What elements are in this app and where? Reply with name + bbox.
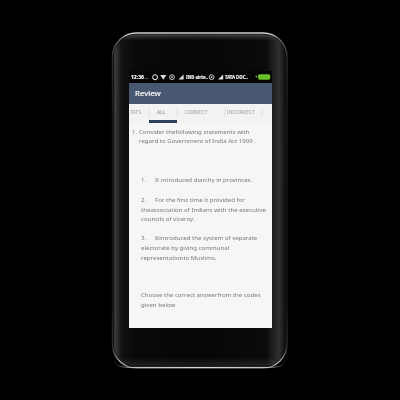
staticText: councils of viceroy. <box>141 214 195 222</box>
staticText: TATA DOC.. <box>225 74 248 80</box>
staticText: CORRECT <box>185 109 208 115</box>
button[interactable]: Review <box>129 83 272 104</box>
staticText: 1. <box>141 175 147 183</box>
staticText: Choose the correct answerfrom the codes <box>141 290 261 298</box>
staticText: INCORRECT <box>227 109 256 115</box>
button[interactable]: CORRECT <box>174 104 219 120</box>
staticText: regard to Government of India Act 1909 . <box>139 136 256 144</box>
staticText: It introduced diarchy in provinces. <box>155 175 253 183</box>
button[interactable]: TATS <box>123 104 149 120</box>
staticText: Itintroduced the system of separate <box>155 233 258 241</box>
staticText: + <box>255 74 258 80</box>
staticText: ALL <box>157 109 166 115</box>
staticText: electorate by giving communal <box>141 243 230 251</box>
button[interactable]: INCORRECT <box>220 104 262 120</box>
button[interactable]: ALL <box>149 104 174 120</box>
staticText: 3. <box>141 233 147 241</box>
staticText: IND airte.. <box>186 74 209 80</box>
staticText: theassociation of Indians with the execu… <box>141 205 267 213</box>
staticText: TATS <box>130 109 142 115</box>
staticText: 1. <box>132 127 138 135</box>
staticText: ... <box>145 75 149 80</box>
staticText: For the first time it provided for <box>155 195 245 203</box>
staticText: Consider thefollowing statements with <box>139 127 250 135</box>
staticText: 2. <box>141 195 147 203</box>
staticText: representationto Muslims. <box>141 253 217 261</box>
staticText: Review <box>135 88 161 99</box>
staticText: given below <box>141 300 176 308</box>
staticText: 12:36 <box>131 74 144 81</box>
